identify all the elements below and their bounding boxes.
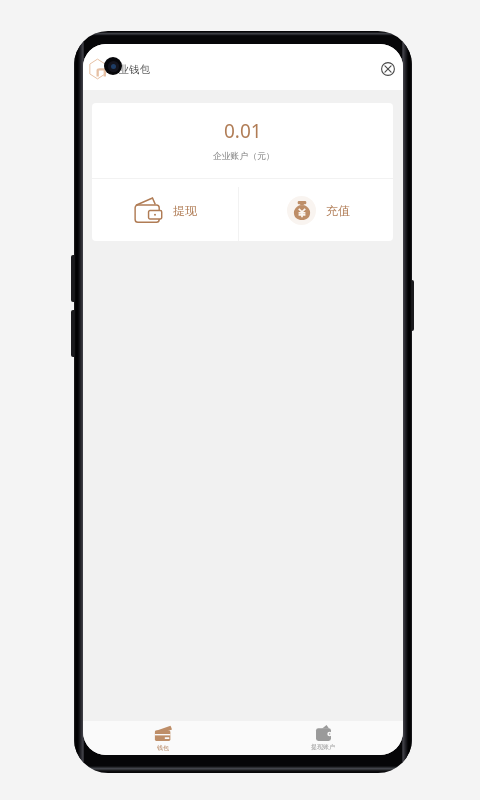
staticText: 钱包 bbox=[157, 744, 169, 752]
button[interactable]: 提现 bbox=[92, 179, 242, 241]
button[interactable]: Close bbox=[378, 59, 398, 79]
staticText: 提现账户 bbox=[311, 743, 335, 751]
button[interactable]: 充值 bbox=[243, 179, 393, 241]
staticText: 充值 bbox=[326, 203, 350, 218]
staticText: 企业钱包 bbox=[108, 63, 150, 76]
button[interactable]: 提现账户 bbox=[243, 721, 403, 755]
staticText: 0.01 bbox=[224, 118, 262, 144]
staticText: 提现 bbox=[173, 203, 197, 218]
button[interactable]: 钱包 bbox=[83, 721, 243, 755]
staticText: 企业账户（元） bbox=[213, 151, 275, 162]
